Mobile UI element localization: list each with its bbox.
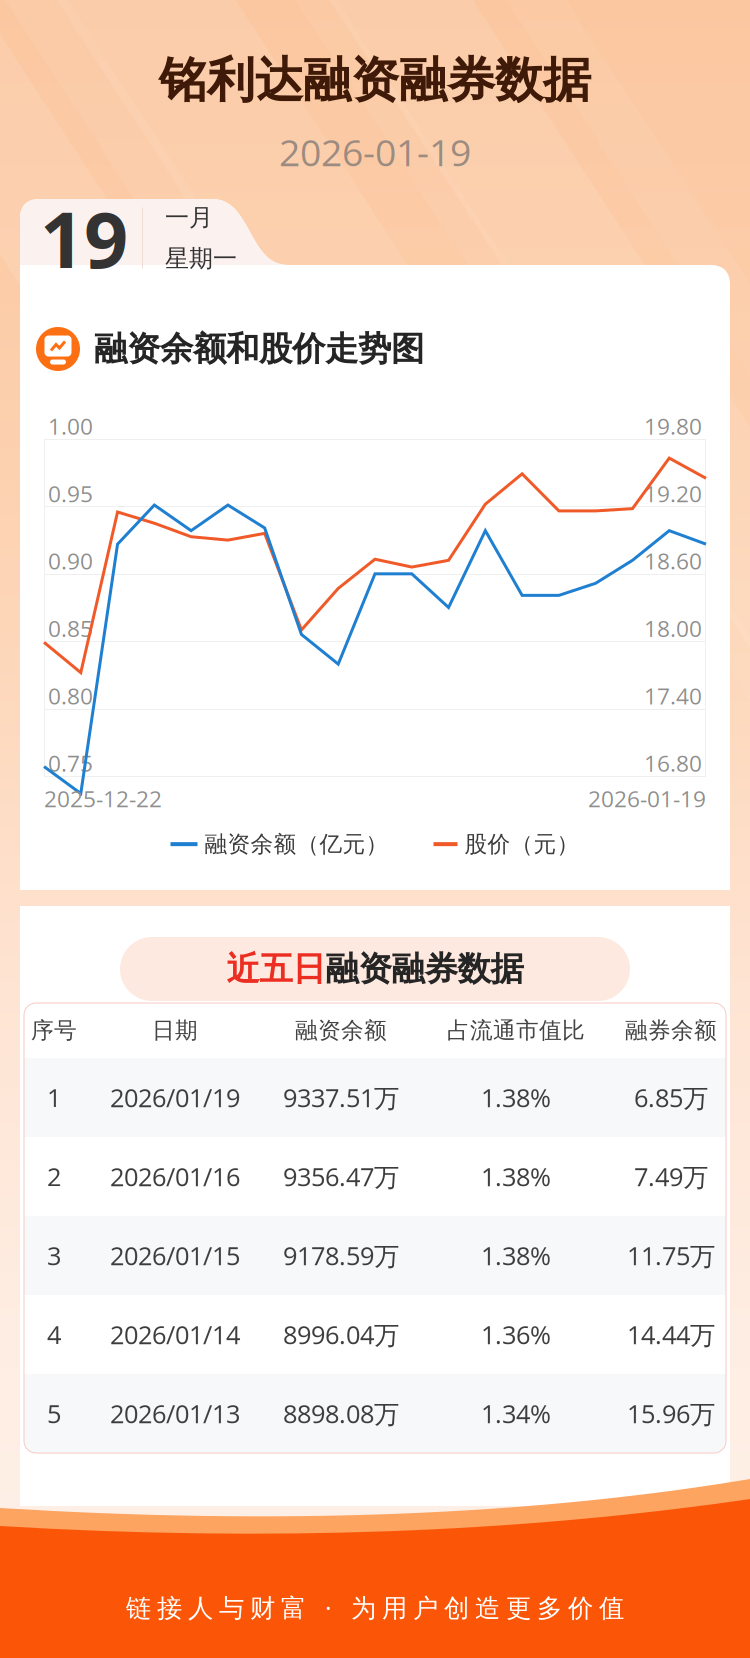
staticText: 近五日 <box>226 948 325 990</box>
staticText: 18.60 <box>644 545 702 576</box>
staticText: 占流通市值比 <box>447 1016 585 1045</box>
staticText: 一月 <box>165 202 213 232</box>
staticText: 2026/01/16 <box>110 1159 240 1194</box>
staticText: 2026-01-19 <box>588 783 706 814</box>
staticText: 16.80 <box>644 748 702 778</box>
staticText: 1.38% <box>481 1080 551 1115</box>
staticText: 19.20 <box>644 478 702 509</box>
staticText: 9178.59万 <box>283 1238 399 1273</box>
staticText: 11.75万 <box>627 1238 715 1273</box>
staticText: 15.96万 <box>627 1396 715 1431</box>
staticText: 2026/01/15 <box>110 1238 240 1273</box>
staticText: 1.34% <box>481 1396 551 1431</box>
staticText: 0.95 <box>48 478 93 509</box>
staticText: 1.36% <box>481 1317 551 1352</box>
staticText: 0.90 <box>48 545 93 576</box>
staticText: 6.85万 <box>634 1080 708 1115</box>
staticText: 18.00 <box>644 613 702 644</box>
staticText: 1.38% <box>481 1159 551 1194</box>
staticText: 19.80 <box>644 411 702 441</box>
staticText: 融券余额 <box>625 1016 717 1045</box>
staticText: 日期 <box>152 1016 198 1045</box>
staticText: 2026/01/13 <box>110 1396 240 1431</box>
staticText: 9337.51万 <box>283 1080 399 1115</box>
staticText: 17.40 <box>644 680 702 711</box>
staticText: 1.00 <box>48 411 93 441</box>
staticText: 9356.47万 <box>283 1159 399 1194</box>
staticText: 2025-12-22 <box>44 783 162 814</box>
staticText: 股价（元） <box>464 830 579 858</box>
staticText: 融资余额 <box>295 1016 387 1045</box>
staticText: 2026-01-19 <box>279 126 471 177</box>
staticText: 8996.04万 <box>283 1317 399 1352</box>
staticText: 铭利达融资融券数据 <box>159 50 591 110</box>
staticText: 2026/01/14 <box>110 1317 240 1352</box>
staticText: 0.80 <box>48 680 93 711</box>
staticText: 14.44万 <box>627 1317 715 1352</box>
staticText: 5 <box>47 1396 61 1431</box>
staticText: 链接人与财富 · 为用户创造更多价值 <box>126 1590 624 1624</box>
staticText: 19 <box>40 185 128 291</box>
staticText: 1 <box>47 1080 61 1115</box>
staticText: 融资融券数据 <box>325 948 523 990</box>
staticText: 序号 <box>31 1016 77 1045</box>
staticText: 2 <box>47 1159 61 1194</box>
staticText: 0.75 <box>48 748 93 778</box>
staticText: 7.49万 <box>634 1159 708 1194</box>
staticText: 8898.08万 <box>283 1396 399 1431</box>
staticText: 4 <box>47 1317 61 1352</box>
staticText: 1.38% <box>481 1238 551 1273</box>
staticText: 3 <box>47 1238 61 1273</box>
staticText: 融资余额（亿元） <box>204 830 388 858</box>
staticText: 2026/01/19 <box>110 1080 240 1115</box>
staticText: 0.85 <box>48 613 93 644</box>
staticText: 星期一 <box>165 243 237 274</box>
staticText: 融资余额和股价走势图 <box>94 328 424 370</box>
